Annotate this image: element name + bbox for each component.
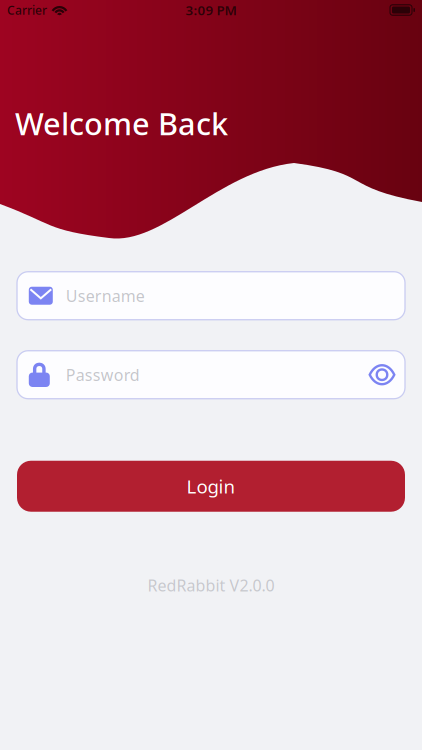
staticText: Welcome Back	[15, 103, 228, 144]
staticText: Carrier	[7, 2, 47, 18]
staticText: 3:09 PM	[185, 1, 236, 19]
staticText: Password	[66, 364, 140, 385]
staticText: RedRabbit V2.0.0	[147, 575, 274, 596]
staticText: Username	[66, 285, 145, 306]
staticText: Login	[186, 474, 235, 499]
button[interactable]: Login	[17, 461, 405, 512]
